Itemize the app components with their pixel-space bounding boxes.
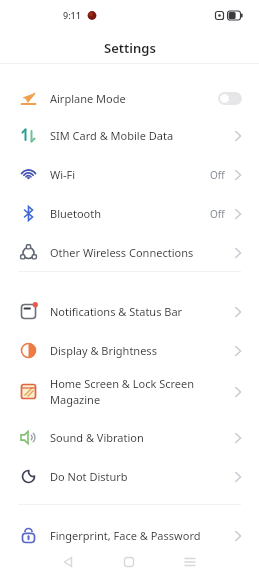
staticText: Other Wireless Connections bbox=[50, 245, 194, 260]
button[interactable]: Fingerprint, Face & Password bbox=[0, 516, 259, 555]
button[interactable]: Other Wireless Connections bbox=[0, 233, 259, 272]
button[interactable]: Home Screen & Lock Screen Magazine bbox=[0, 364, 259, 419]
button[interactable]: SIM Card & Mobile Data bbox=[0, 116, 259, 155]
staticText: Wi-Fi bbox=[50, 167, 76, 182]
staticText: SIM Card & Mobile Data bbox=[50, 128, 174, 143]
button[interactable] bbox=[173, 548, 259, 576]
button[interactable]: Do Not Disturb bbox=[0, 457, 259, 496]
staticText: Off bbox=[210, 207, 225, 221]
staticText: Airplane Mode bbox=[50, 91, 126, 106]
button[interactable]: Bluetooth bbox=[0, 194, 259, 233]
button[interactable]: Display & Brightness bbox=[0, 331, 259, 370]
staticText: Settings bbox=[104, 39, 156, 57]
staticText: Fingerprint, Face & Password bbox=[50, 528, 201, 543]
button[interactable] bbox=[87, 548, 173, 576]
staticText: Bluetooth bbox=[50, 206, 102, 221]
staticText: Home Screen & Lock Screen Magazine bbox=[50, 376, 195, 407]
staticText: Notifications & Status Bar bbox=[50, 304, 183, 319]
staticText: Sound & Vibration bbox=[50, 430, 144, 445]
staticText: Do Not Disturb bbox=[50, 469, 128, 484]
button[interactable] bbox=[0, 548, 87, 576]
button[interactable]: Sound & Vibration bbox=[0, 418, 259, 457]
button[interactable]: Notifications & Status Bar bbox=[0, 292, 259, 331]
staticText: Display & Brightness bbox=[50, 343, 157, 358]
staticText: Off bbox=[210, 168, 225, 182]
staticText: 9:11 bbox=[63, 9, 81, 21]
button[interactable]: Wi-Fi bbox=[0, 155, 259, 194]
button[interactable]: Airplane Mode bbox=[0, 79, 259, 118]
